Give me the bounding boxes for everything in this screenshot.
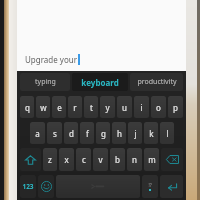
staticText: n [132,154,137,165]
staticText: t [90,102,93,113]
staticText: h [117,128,122,139]
button[interactable]: v [93,148,108,171]
staticText: y [105,102,110,113]
button[interactable]: keyboard [72,73,128,91]
button[interactable]: l [160,122,174,144]
button[interactable]: m [144,148,159,171]
button[interactable]: f [80,122,94,144]
button[interactable]: Numbers and symbols [20,175,36,198]
staticText: e [57,102,62,113]
button[interactable]: s [47,122,62,144]
button[interactable]: u [117,96,132,118]
staticText: q [25,102,30,113]
staticText: o [156,102,161,113]
staticText: x [64,154,69,165]
button[interactable]: Emoji [38,175,54,198]
button[interactable]: Backspace [161,148,183,171]
staticText: k [149,128,154,139]
staticText: f [86,128,89,139]
button[interactable]: a [30,122,45,144]
staticText: m [148,154,156,165]
button[interactable]: g [96,122,110,144]
staticText: c [82,154,86,165]
button[interactable]: h [112,122,126,144]
button[interactable]: b [110,148,125,171]
button[interactable]: k [144,122,158,144]
staticText: r [73,102,77,113]
button[interactable]: Shift [20,148,41,171]
button[interactable]: c [76,148,91,171]
button[interactable]: r [68,96,82,118]
staticText: Upgrade your [25,54,77,65]
button[interactable]: z [43,148,57,171]
button[interactable]: i [134,96,149,118]
staticText: g [101,128,106,139]
staticText: a [35,128,40,139]
button[interactable]: Period [142,175,158,198]
staticText: z [48,154,52,165]
button[interactable]: productivity [130,73,183,91]
staticText: 123 [22,182,34,191]
button[interactable]: n [127,148,142,171]
button[interactable]: w [36,96,50,118]
staticText: l [166,128,169,139]
button[interactable]: y [100,96,115,118]
button[interactable]: x [59,148,74,171]
staticText: d [69,128,74,139]
button[interactable]: typing [20,73,70,91]
button[interactable]: o [151,96,166,118]
staticText: s [53,128,57,139]
staticText: i [140,102,143,113]
staticText: w [40,102,47,113]
button[interactable]: t [84,96,98,118]
button[interactable]: e [52,96,66,118]
button[interactable]: Upgrade your [17,0,186,71]
button[interactable]: Enter [160,175,183,198]
staticText: v [98,154,103,165]
button[interactable]: j [128,122,142,144]
staticText: j [134,128,137,139]
staticText: p [173,102,178,113]
button[interactable]: q [20,96,34,118]
staticText: productivity [137,77,177,87]
staticText: u [122,102,127,113]
staticText: typing [35,77,56,87]
button[interactable]: p [168,96,183,118]
staticText: keyboard [81,77,119,88]
staticText: !? [148,182,152,188]
button[interactable]: d [64,122,78,144]
staticText: b [115,154,120,165]
